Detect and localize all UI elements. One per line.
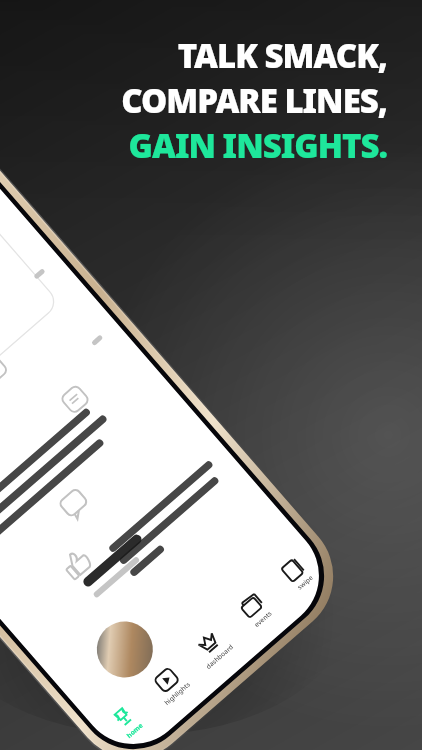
staticText: events	[252, 608, 274, 629]
staticText: highlights	[162, 679, 192, 707]
staticText: swipe	[295, 573, 315, 592]
button[interactable]: highlights	[129, 643, 210, 726]
button[interactable]: dashboard	[171, 607, 253, 689]
staticText: COMPARE LINES,	[121, 78, 387, 123]
staticText: home	[125, 721, 145, 740]
button[interactable]: home	[86, 681, 167, 750]
staticText: GAIN INSIGHTS.	[128, 123, 387, 168]
button[interactable]: events	[214, 569, 296, 652]
staticText: TALK SMACK,	[177, 33, 387, 78]
button[interactable]: swipe	[257, 532, 338, 615]
staticText: dashboard	[204, 642, 235, 671]
